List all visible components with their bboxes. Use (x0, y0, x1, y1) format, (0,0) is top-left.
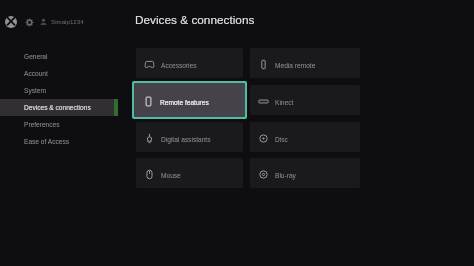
staticText: Disc (275, 136, 288, 143)
button[interactable]: Devices & connections (0, 99, 118, 116)
button[interactable]: Simalp1234 (39, 17, 84, 26)
staticText: General (24, 53, 48, 60)
button[interactable]: Blu-ray (250, 158, 360, 188)
button[interactable]: Digital assistants (136, 122, 243, 152)
button[interactable]: Mouse (136, 158, 243, 188)
staticText: Blu-ray (275, 172, 296, 179)
staticText: Simalp1234 (51, 18, 84, 25)
staticText: Accessories (161, 62, 197, 69)
button[interactable]: System (0, 82, 118, 99)
staticText: Ease of Access (24, 138, 70, 145)
staticText: Devices & connections (24, 104, 91, 111)
button[interactable]: Xbox home (5, 16, 17, 28)
button[interactable]: Disc (250, 122, 360, 152)
button[interactable]: General (0, 48, 118, 65)
staticText: Account (24, 70, 48, 77)
button[interactable]: Preferences (0, 116, 118, 133)
staticText: Mouse (161, 172, 181, 179)
button[interactable]: Ease of Access (0, 133, 118, 150)
staticText: Preferences (24, 121, 60, 128)
staticText: Digital assistants (161, 136, 211, 143)
staticText: Kinect (275, 99, 294, 106)
staticText: Devices & connections (135, 13, 255, 26)
staticText: Media remote (275, 62, 316, 69)
staticText: Remote features (160, 99, 209, 106)
button[interactable]: Settings (25, 18, 34, 27)
button[interactable]: Accessories (136, 48, 243, 78)
button[interactable]: Remote features (134, 83, 245, 117)
button[interactable]: Media remote (250, 48, 360, 78)
button[interactable]: Kinect (250, 85, 360, 115)
staticText: System (24, 87, 46, 94)
button[interactable]: Account (0, 65, 118, 82)
